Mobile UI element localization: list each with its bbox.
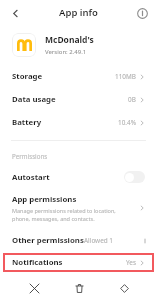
staticText: Data usage — [12, 94, 56, 105]
button[interactable]: Back — [5, 3, 25, 23]
staticText: 110MB — [115, 72, 136, 81]
button[interactable]: Other permissions — [0, 229, 157, 252]
staticText: Autostart — [12, 172, 50, 183]
button[interactable]: Clear data — [109, 282, 139, 300]
staticText: App permissions — [12, 194, 77, 205]
staticText: Other permissions — [12, 235, 84, 246]
button[interactable]: Storage — [0, 65, 157, 88]
staticText: 0B — [128, 95, 136, 104]
button[interactable]: Autostart — [0, 165, 157, 189]
staticText: App info — [59, 6, 98, 19]
button[interactable]: Force stop — [19, 282, 50, 300]
staticText: Battery — [12, 117, 42, 128]
staticText: Permissions — [12, 152, 48, 160]
button[interactable]: App details — [132, 3, 152, 23]
button[interactable]: Data usage — [0, 88, 157, 111]
button[interactable]: Uninstall — [66, 282, 93, 300]
staticText: McDonald's — [45, 34, 94, 46]
staticText: Version: 2.49.1 — [45, 48, 87, 56]
staticText: phone, messages, and contacts. — [12, 215, 95, 222]
staticText: Yes — [126, 258, 136, 267]
staticText: Storage — [12, 71, 43, 82]
button[interactable]: Notifications — [3, 253, 154, 272]
staticText: Notifications — [12, 257, 63, 268]
staticText: Manage permissions related to location, … — [12, 207, 135, 214]
button[interactable]: Autostart toggle — [124, 171, 145, 183]
button[interactable]: McDonald's — [12, 33, 145, 57]
staticText: 10.4% — [118, 118, 136, 127]
staticText: Allowed 1 permission — [84, 236, 145, 245]
button[interactable]: App permissions — [0, 189, 157, 227]
button[interactable]: Battery — [0, 111, 157, 134]
